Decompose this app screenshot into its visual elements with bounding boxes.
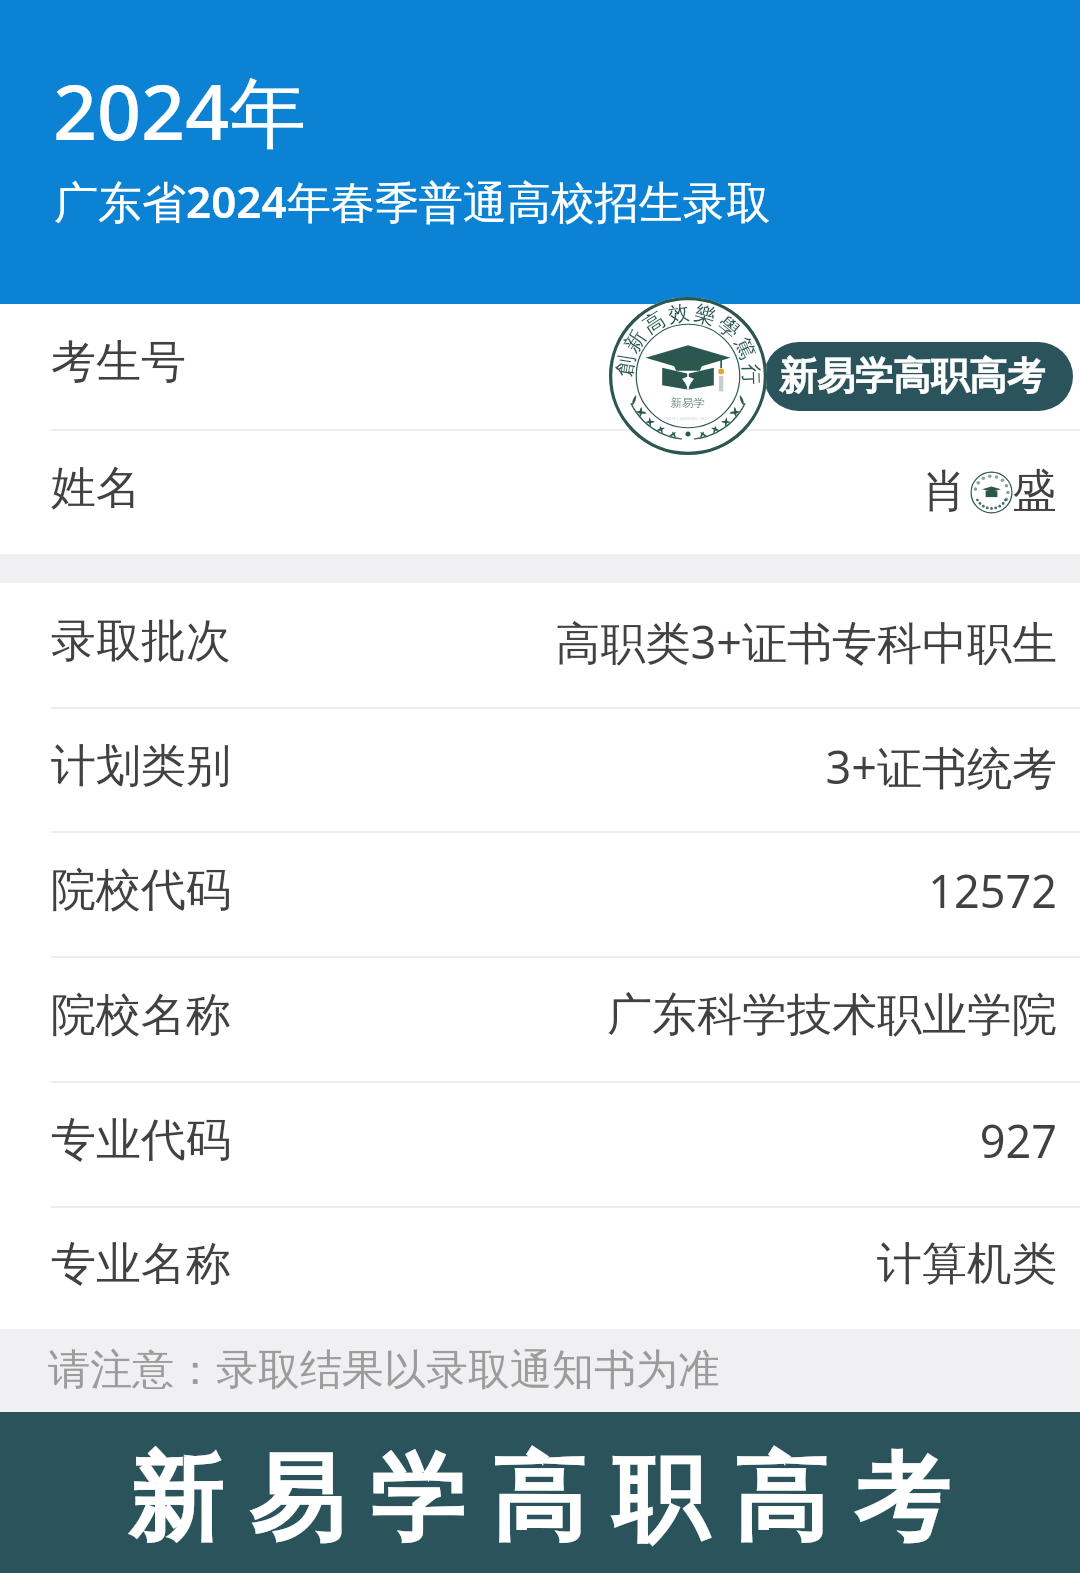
staticText: 新易学高职高考 (779, 352, 1045, 400)
staticText: 专业名称 (51, 1236, 231, 1293)
staticText: 录取批次 (51, 613, 231, 670)
staticText: 高职类3+证书专科中职生 (555, 611, 1057, 672)
button[interactable]: 专业名称 (0, 1208, 1080, 1328)
staticText: 院校名称 (51, 987, 231, 1044)
staticText: 计划类别 (51, 738, 231, 795)
button[interactable]: 新易学高职高考 (764, 342, 1073, 411)
staticText: 肖 盛 (922, 458, 1057, 519)
staticText: 927 (979, 1110, 1057, 1171)
button[interactable]: 录取批次 (0, 583, 1080, 707)
button[interactable]: 计划类别 (0, 709, 1080, 831)
staticText: 12572 (928, 860, 1057, 921)
button[interactable]: 专业代码 (0, 1083, 1080, 1206)
staticText: 广东省2024年春季普通高校招生录取 (54, 171, 771, 231)
other: 验证印章 (970, 471, 1013, 514)
staticText: 院校代码 (51, 862, 231, 919)
staticText: 新易学高职高考 (115, 1440, 962, 1560)
button[interactable]: 院校名称 (0, 958, 1080, 1081)
staticText: 3+证书统考 (825, 736, 1057, 797)
staticText: 考生号 (51, 334, 186, 391)
button[interactable]: 院校代码 (0, 833, 1080, 956)
staticText: 2024年 (53, 58, 307, 163)
button[interactable]: 考生号 (0, 304, 1080, 429)
button[interactable]: 姓名 (0, 431, 1080, 554)
staticText: 计算机类 (877, 1236, 1057, 1293)
staticText: 专业代码 (51, 1112, 231, 1169)
staticText: 广东科学技术职业学院 (607, 987, 1057, 1044)
other: 新易学 logo (608, 296, 768, 456)
staticText: 请注意：录取结果以录取通知书为准 (48, 1344, 720, 1397)
staticText: 姓名 (51, 460, 141, 517)
